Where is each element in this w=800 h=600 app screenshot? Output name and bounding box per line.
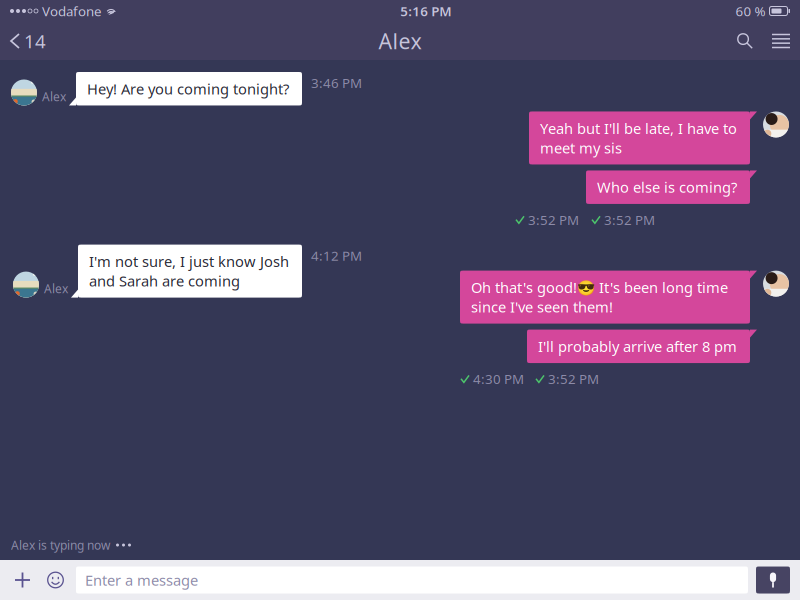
staticText: Who else is coming? bbox=[597, 177, 737, 197]
button[interactable]: I'm not sure, I just know Josh and Sarah… bbox=[68, 245, 362, 298]
button[interactable]: Oh that's good!😎 It's been long time sin… bbox=[460, 271, 757, 324]
button[interactable]: Hey! Are you coming tonight? bbox=[66, 72, 362, 105]
staticText: 14 bbox=[24, 29, 46, 53]
staticText: 3:52 PM bbox=[548, 370, 599, 388]
staticText: Enter a message bbox=[85, 570, 198, 590]
staticText: Hey! Are you coming tonight? bbox=[87, 79, 289, 98]
staticText: 3:52 PM bbox=[528, 211, 579, 229]
button[interactable]: Add attachment bbox=[10, 567, 35, 592]
staticText: 60 % bbox=[735, 2, 765, 20]
staticText: Alex is typing now bbox=[11, 537, 110, 553]
button[interactable]: Who else is coming? bbox=[586, 170, 757, 204]
button[interactable]: Record voice message bbox=[756, 566, 790, 593]
staticText: Alex bbox=[42, 88, 66, 104]
staticText: Oh that's good!😎 It's been long time sin… bbox=[471, 278, 728, 317]
button[interactable]: Enter a message bbox=[76, 566, 748, 593]
staticText: 3:52 PM bbox=[604, 211, 655, 229]
staticText: 3:46 PM bbox=[311, 74, 362, 92]
button[interactable]: Alex's profile photo bbox=[11, 79, 37, 105]
button[interactable]: Yeah but I'll be late, I have to meet my… bbox=[529, 111, 757, 164]
button[interactable]: Alex's profile photo bbox=[13, 272, 39, 298]
button[interactable]: Search bbox=[728, 22, 762, 60]
button[interactable]: 14 bbox=[0, 22, 57, 60]
button[interactable]: Emoji bbox=[43, 567, 68, 592]
button[interactable]: Menu bbox=[762, 22, 800, 60]
staticText: Yeah but I'll be late, I have to meet my… bbox=[540, 118, 737, 157]
staticText: Vodafone bbox=[42, 2, 102, 20]
staticText: 4:12 PM bbox=[311, 247, 362, 264]
staticText: 4:30 PM bbox=[473, 370, 524, 388]
staticText: I'll probably arrive after 8 pm bbox=[538, 337, 737, 356]
staticText: Alex bbox=[44, 281, 68, 296]
staticText: 5:16 PM bbox=[400, 2, 451, 20]
button[interactable]: I'll probably arrive after 8 pm bbox=[527, 330, 757, 363]
staticText: I'm not sure, I just know Josh and Sarah… bbox=[89, 252, 289, 291]
staticText: Alex bbox=[378, 27, 421, 55]
